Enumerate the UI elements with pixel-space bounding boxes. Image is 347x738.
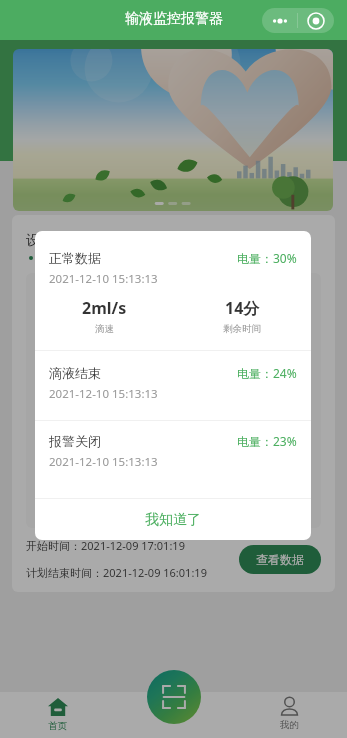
button[interactable]: More: [262, 8, 297, 33]
button[interactable]: 我知道了: [35, 499, 311, 540]
staticText: 首页: [48, 720, 67, 732]
button[interactable]: 我的: [231, 692, 347, 738]
staticText: 14分: [225, 297, 260, 319]
staticText: 我知道了: [145, 511, 201, 529]
staticText: 电量：30%: [237, 250, 297, 266]
button[interactable]: Scan QR code: [147, 670, 201, 724]
button[interactable]: 首页: [0, 692, 115, 738]
staticText: 剩余时间: [223, 323, 261, 335]
staticText: 2ml/s: [82, 297, 127, 319]
button[interactable]: Close: [298, 8, 334, 33]
staticText: 查看数据: [256, 552, 304, 567]
staticText: 电量：24%: [237, 365, 297, 381]
staticText: 报警关闭: [49, 433, 237, 449]
staticText: 设备在线: [39, 251, 83, 265]
staticText: 设备状态: [26, 232, 82, 250]
staticText: 2021-12-10 15:13:13: [49, 271, 158, 287]
button[interactable]: 查看数据: [239, 545, 321, 574]
staticText: 计划结束时间：2021-12-09 16:01:19: [26, 565, 207, 580]
staticText: 2021-12-10 15:13:13: [49, 454, 158, 470]
staticText: 2021-12-10 15:13:13: [49, 386, 158, 402]
staticText: 开始时间：2021-12-09 17:01:19: [26, 538, 185, 553]
staticText: 正常数据: [49, 250, 237, 266]
staticText: 我的: [280, 719, 299, 731]
staticText: 滴液结束: [49, 365, 237, 381]
staticText: 滴速: [95, 323, 114, 335]
staticText: 输液监控报警器: [125, 10, 223, 28]
staticText: 电量：23%: [237, 433, 297, 449]
